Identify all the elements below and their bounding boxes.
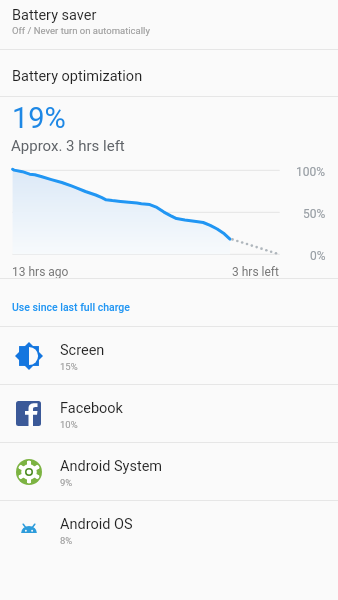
button[interactable]: Battery saver — [0, 0, 338, 49]
button[interactable]: Android OS — [0, 501, 338, 558]
staticText: 50% — [303, 207, 326, 221]
staticText: Battery saver — [12, 7, 97, 24]
staticText: 8% — [60, 535, 73, 546]
staticText: Use since last full charge — [12, 301, 130, 313]
staticText: Android System — [60, 458, 163, 475]
staticText: 0% — [310, 249, 326, 263]
button[interactable]: Screen — [0, 327, 338, 384]
staticText: 19% — [12, 101, 66, 135]
button[interactable]: Android System — [0, 443, 338, 500]
button[interactable]: Facebook — [0, 385, 338, 442]
staticText: 15% — [60, 361, 78, 372]
button[interactable]: Battery optimization — [0, 50, 338, 96]
staticText: 10% — [60, 419, 78, 430]
staticText: 100% — [296, 165, 326, 179]
button[interactable]: Use since last full charge — [0, 279, 338, 326]
staticText: Battery optimization — [12, 68, 143, 85]
staticText: Facebook — [60, 400, 123, 417]
staticText: Screen — [60, 342, 105, 359]
staticText: 3 hrs left — [232, 265, 279, 279]
staticText: Approx. 3 hrs left — [11, 137, 125, 155]
staticText: 13 hrs ago — [12, 265, 69, 279]
staticText: 9% — [60, 477, 73, 488]
staticText: Android OS — [60, 516, 133, 533]
staticText: Off / Never turn on automatically — [12, 25, 150, 36]
